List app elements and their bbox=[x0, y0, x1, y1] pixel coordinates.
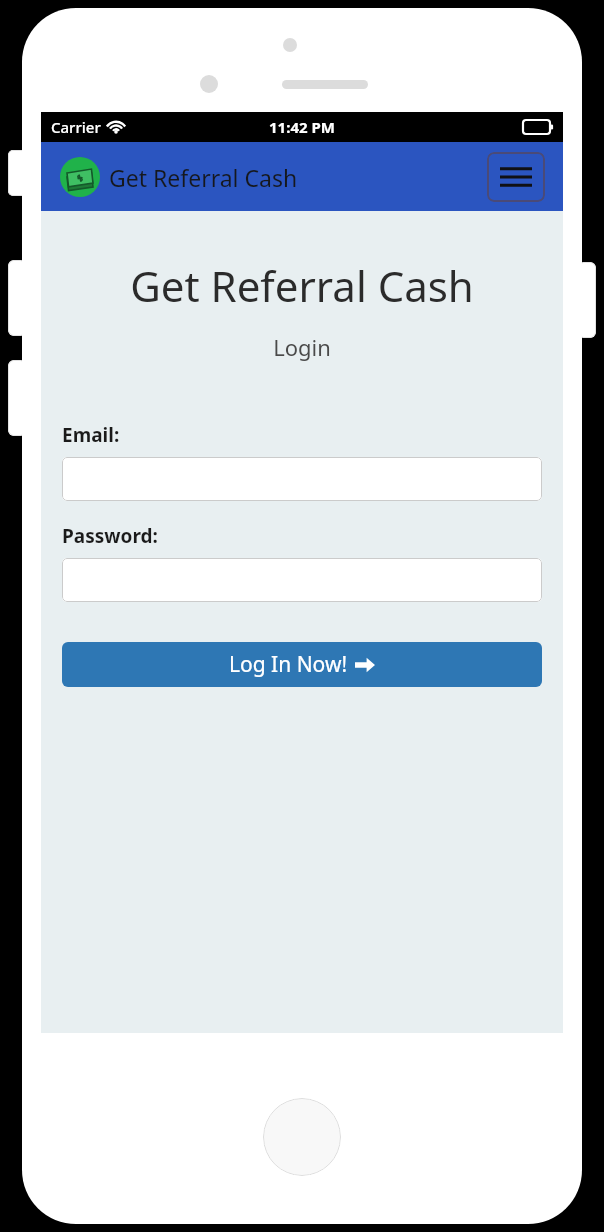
staticText: Get Referral Cash bbox=[41, 257, 563, 314]
button[interactable]: Log In Now! bbox=[62, 642, 542, 687]
staticText: Carrier bbox=[51, 117, 101, 137]
staticText: 11:42 PM bbox=[269, 117, 335, 137]
staticText: Login bbox=[41, 332, 563, 362]
staticText: Password: bbox=[62, 523, 158, 549]
button[interactable]: Get Referral Cash bbox=[60, 157, 298, 197]
staticText: Get Referral Cash bbox=[109, 162, 298, 193]
staticText: Log In Now! bbox=[229, 650, 348, 679]
staticText: Email: bbox=[62, 422, 120, 448]
button[interactable] bbox=[62, 558, 542, 602]
button[interactable]: Menu bbox=[487, 152, 545, 202]
button[interactable] bbox=[62, 457, 542, 501]
